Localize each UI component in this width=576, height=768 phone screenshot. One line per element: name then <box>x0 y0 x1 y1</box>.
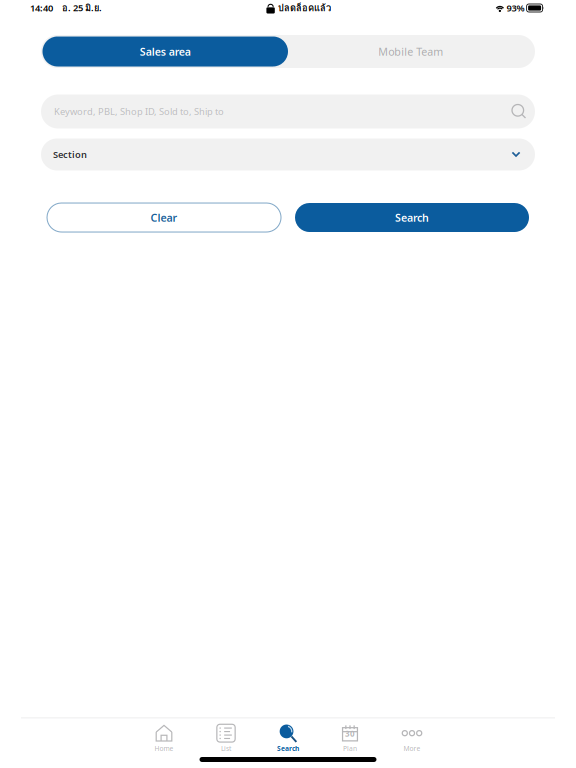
button[interactable]: List <box>195 718 257 752</box>
staticText: ปลดล็อคแล้ว <box>275 1 331 15</box>
staticText: Mobile Team <box>378 44 443 59</box>
button[interactable]: Search <box>295 203 529 232</box>
staticText: Keyword, PBL, Shop ID, Sold to, Ship to <box>54 105 224 118</box>
button[interactable]: Section <box>41 138 535 170</box>
staticText: 14:40 <box>30 2 53 14</box>
button[interactable]: Home <box>133 718 195 752</box>
staticText: More <box>403 744 420 753</box>
staticText: Plan <box>343 744 357 753</box>
button[interactable]: Mobile Team <box>288 36 533 66</box>
button[interactable]: 30 <box>319 718 381 752</box>
staticText: Clear <box>150 210 177 225</box>
button[interactable]: Clear <box>47 203 281 232</box>
staticText: อ. 25 มิ.ย. <box>53 1 102 15</box>
staticText: 93% <box>505 2 527 14</box>
staticText: Search <box>277 744 299 753</box>
button[interactable]: Search <box>257 718 319 752</box>
button[interactable]: Sales area <box>42 36 288 66</box>
staticText: Sales area <box>140 44 191 59</box>
staticText: Home <box>154 744 173 753</box>
button[interactable]: More <box>381 718 443 752</box>
staticText: Section <box>53 148 87 161</box>
staticText: 30 <box>345 728 355 739</box>
staticText: Search <box>395 210 429 225</box>
staticText: List <box>221 744 231 753</box>
